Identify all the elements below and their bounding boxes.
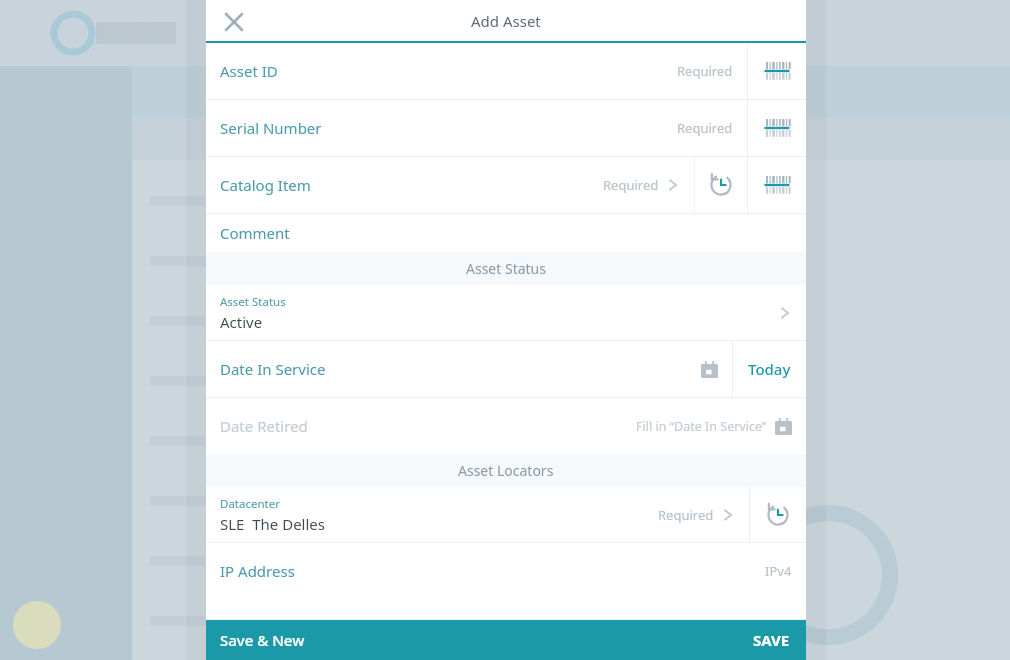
staticText: Asset ID bbox=[220, 61, 278, 81]
button[interactable]: Catalog Item bbox=[206, 157, 694, 213]
button[interactable]: Serial Number bbox=[206, 100, 747, 156]
button[interactable]: Date Retired bbox=[206, 398, 806, 454]
button[interactable]: Asset Status bbox=[206, 285, 806, 340]
staticText: IP Address bbox=[220, 561, 295, 581]
staticText: Fill in “Date In Service” bbox=[636, 418, 767, 435]
button[interactable]: Scan barcode bbox=[748, 157, 806, 213]
staticText: Required bbox=[603, 176, 659, 194]
button[interactable]: History bbox=[750, 487, 806, 542]
button[interactable]: Date In Service bbox=[206, 341, 732, 397]
button[interactable]: IP Address bbox=[206, 543, 806, 598]
staticText: Datacenter bbox=[220, 496, 280, 512]
staticText: Save & New bbox=[220, 630, 305, 650]
staticText: Active bbox=[220, 312, 263, 332]
staticText: Add Asset bbox=[471, 11, 541, 31]
button[interactable]: SAVE bbox=[739, 620, 806, 660]
staticText: Asset Status bbox=[466, 259, 546, 278]
button[interactable]: Asset ID bbox=[206, 43, 747, 99]
button[interactable]: Today bbox=[733, 341, 806, 397]
staticText: Asset Status bbox=[220, 294, 286, 310]
staticText: Date Retired bbox=[220, 416, 308, 436]
staticText: Catalog Item bbox=[220, 175, 311, 195]
button[interactable]: Scan barcode bbox=[748, 43, 806, 99]
button[interactable]: Save & New bbox=[206, 620, 319, 660]
staticText: Required bbox=[658, 506, 714, 524]
staticText: Date In Service bbox=[220, 359, 326, 379]
staticText: IPv4 bbox=[765, 562, 792, 580]
staticText: Required bbox=[677, 119, 733, 137]
staticText: Today bbox=[748, 359, 791, 379]
button[interactable]: Close bbox=[214, 2, 254, 42]
staticText: Comment bbox=[220, 223, 290, 243]
staticText: Required bbox=[677, 62, 733, 80]
button[interactable]: Datacenter bbox=[206, 487, 749, 542]
button[interactable]: Comment bbox=[206, 214, 806, 252]
staticText: Asset Locators bbox=[458, 461, 554, 480]
staticText: SAVE bbox=[753, 630, 790, 650]
staticText: Serial Number bbox=[220, 118, 322, 138]
button[interactable]: History bbox=[695, 157, 747, 213]
button[interactable]: Scan barcode bbox=[748, 100, 806, 156]
staticText: SLE The Delles bbox=[220, 514, 326, 534]
